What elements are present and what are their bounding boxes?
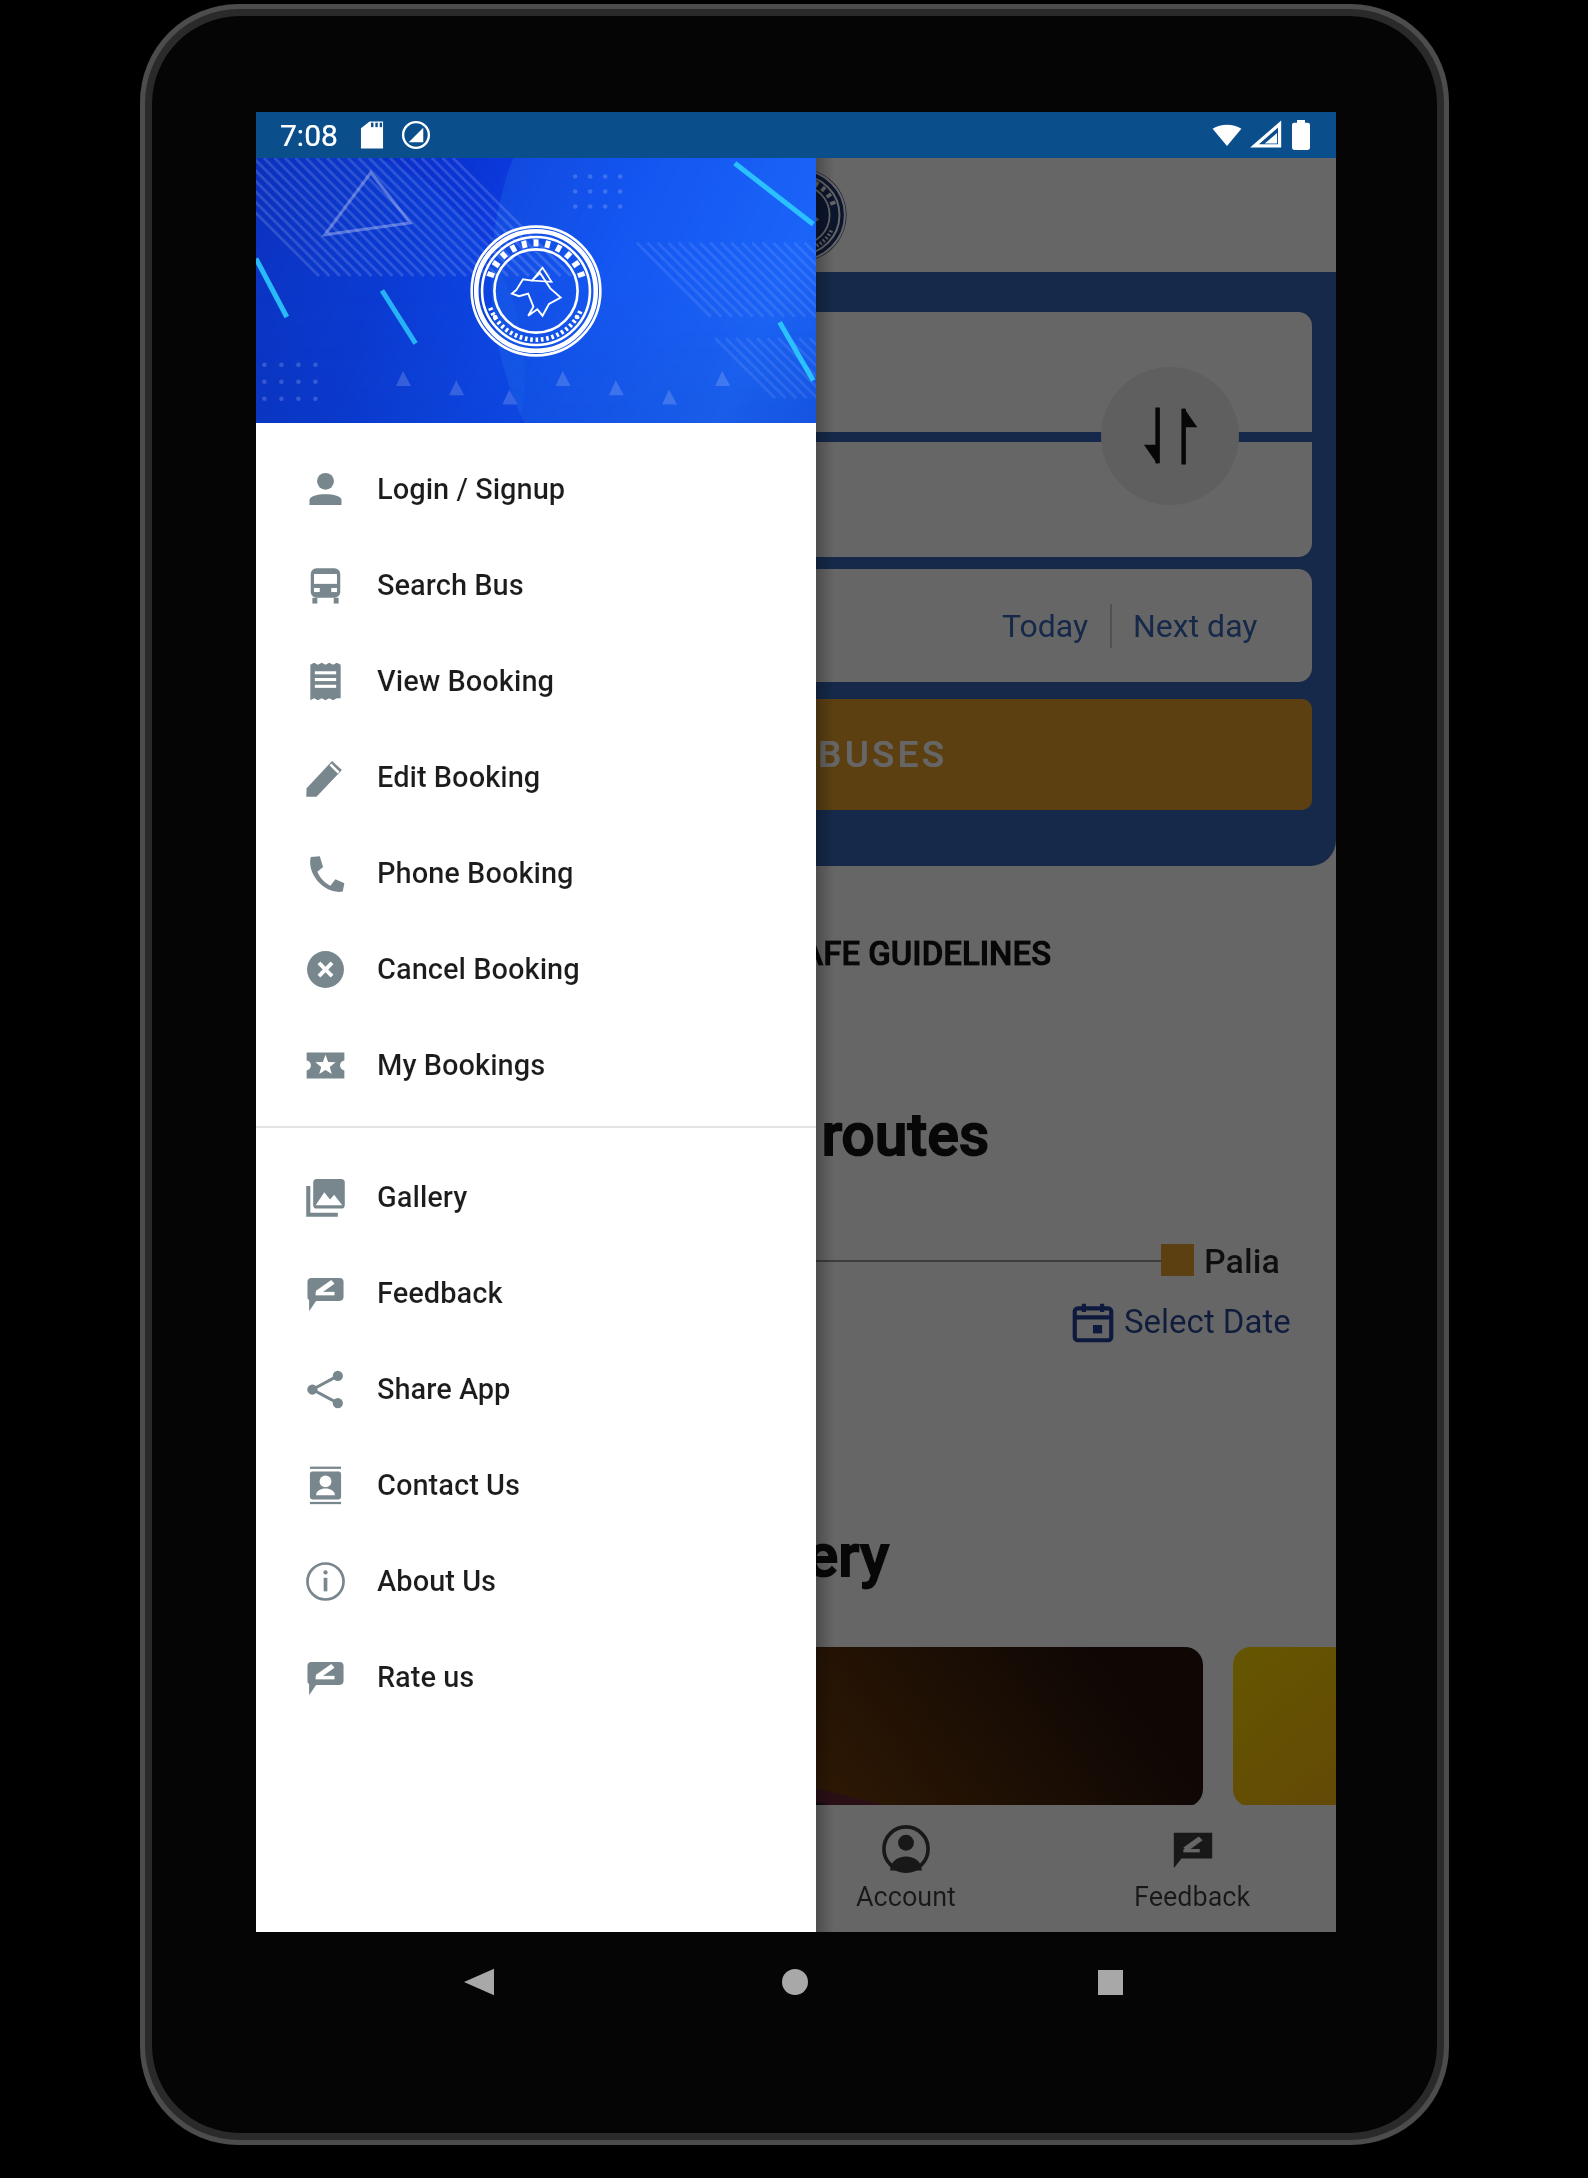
staticText: Popular routes	[602, 1100, 990, 1169]
button[interactable]: Palia	[288, 1202, 1304, 1372]
staticText: Share App	[377, 1372, 511, 1406]
button[interactable]: Feedback	[256, 1245, 816, 1341]
staticText: Edit Booking	[377, 760, 541, 794]
button[interactable]: Gallery	[256, 1149, 816, 1245]
button[interactable]: Contact Us	[256, 1437, 816, 1533]
staticText: View Booking	[377, 664, 554, 698]
button[interactable]: Account	[762, 1805, 1049, 1932]
staticText: 7:08	[280, 118, 338, 153]
staticText: Today	[1002, 607, 1089, 645]
button[interactable]: From city	[280, 312, 1312, 432]
button[interactable]: Today	[996, 601, 1095, 651]
button[interactable]: Swap source and destination	[1101, 367, 1239, 505]
button[interactable]: Phone Booking	[256, 825, 816, 921]
button[interactable]: Home	[771, 1958, 819, 2006]
button[interactable]: Login / Signup	[256, 441, 816, 537]
staticText: Contact Us	[377, 1468, 520, 1502]
button[interactable]: About Us	[256, 1533, 816, 1629]
button[interactable]: SEARCH BUSES	[280, 699, 1312, 810]
button[interactable]: View Booking	[256, 633, 816, 729]
button[interactable]: Feedback	[1049, 1805, 1336, 1932]
button[interactable]: Gallery photo 1	[288, 1647, 1203, 1807]
staticText: COVID SAFE GUIDELINES	[677, 934, 1052, 973]
staticText: Search Bus	[377, 568, 524, 602]
staticText: About Us	[377, 1564, 497, 1598]
button[interactable]: Cancel Booking	[256, 921, 816, 1017]
staticText: Palia	[1204, 1241, 1280, 1281]
button[interactable]: Back	[455, 1958, 503, 2006]
staticText: Cancel Booking	[377, 952, 580, 986]
button[interactable]: Close navigation drawer	[256, 158, 1336, 1932]
staticText: Rate us	[377, 1660, 475, 1694]
button[interactable]: Home	[188, 1805, 475, 1932]
button[interactable]: Share App	[256, 1341, 816, 1437]
staticText: Gallery	[377, 1180, 468, 1214]
button[interactable]: Recents	[1086, 1958, 1134, 2006]
staticText: Phone Booking	[377, 856, 574, 890]
button[interactable]: Select Date	[1074, 1302, 1291, 1341]
staticText: Next day	[1133, 607, 1258, 645]
staticText: Account	[856, 1881, 956, 1913]
button[interactable]: COVID SAFE GUIDELINES	[288, 897, 1304, 1009]
staticText: Login / Signup	[377, 472, 566, 506]
button[interactable]: Search Bus	[256, 537, 816, 633]
button[interactable]: Rate us	[256, 1629, 816, 1725]
staticText: SEARCH BUSES	[645, 733, 948, 776]
staticText: Select Date	[1124, 1302, 1291, 1341]
button[interactable]: Gallery photo 2	[1233, 1647, 1336, 1807]
button[interactable]: Edit Booking	[256, 729, 816, 825]
button[interactable]: Next day	[1127, 601, 1264, 651]
button[interactable]: My Bookings	[256, 1017, 816, 1113]
staticText: Feedback	[377, 1276, 503, 1310]
staticText: Gallery	[702, 1520, 890, 1590]
staticText: Feedback	[1134, 1881, 1251, 1913]
staticText: My Bookings	[377, 1048, 546, 1082]
button[interactable]: To city	[280, 442, 1312, 557]
